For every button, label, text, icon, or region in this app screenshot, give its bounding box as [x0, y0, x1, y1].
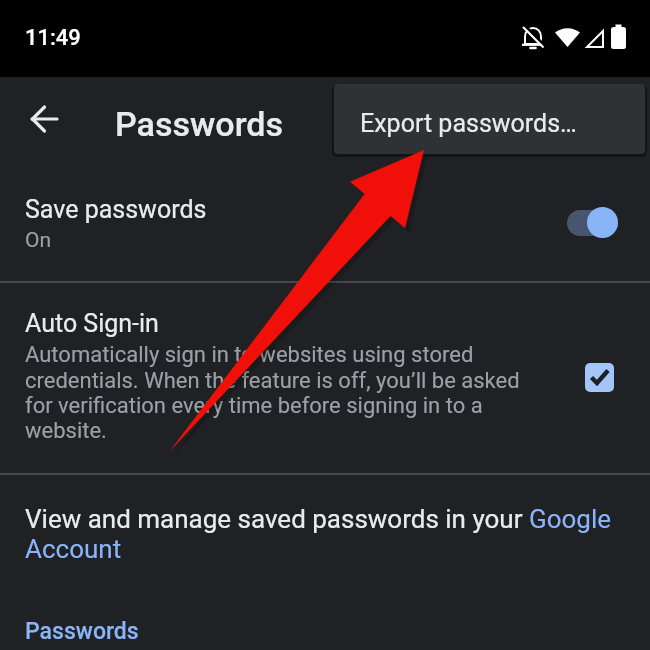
staticText: Passwords: [115, 104, 284, 144]
button[interactable]: View and manage saved passwords in your …: [0, 475, 650, 585]
button[interactable]: [567, 210, 618, 236]
staticText: Auto Sign-in: [25, 309, 159, 338]
staticText: Automatically sign in to websites using …: [25, 342, 520, 443]
staticText: Passwords: [25, 618, 139, 645]
staticText: Export passwords…: [360, 109, 577, 138]
button[interactable]: [31, 105, 59, 133]
staticText: On: [25, 228, 52, 253]
button[interactable]: Export passwords…: [334, 84, 645, 154]
staticText: Save passwords: [25, 195, 207, 224]
button[interactable]: Save passwords: [0, 178, 650, 281]
staticText: 11:49: [25, 25, 81, 51]
button[interactable]: Auto Sign-in: [0, 283, 650, 473]
staticText: View and manage saved passwords in your …: [25, 504, 612, 564]
